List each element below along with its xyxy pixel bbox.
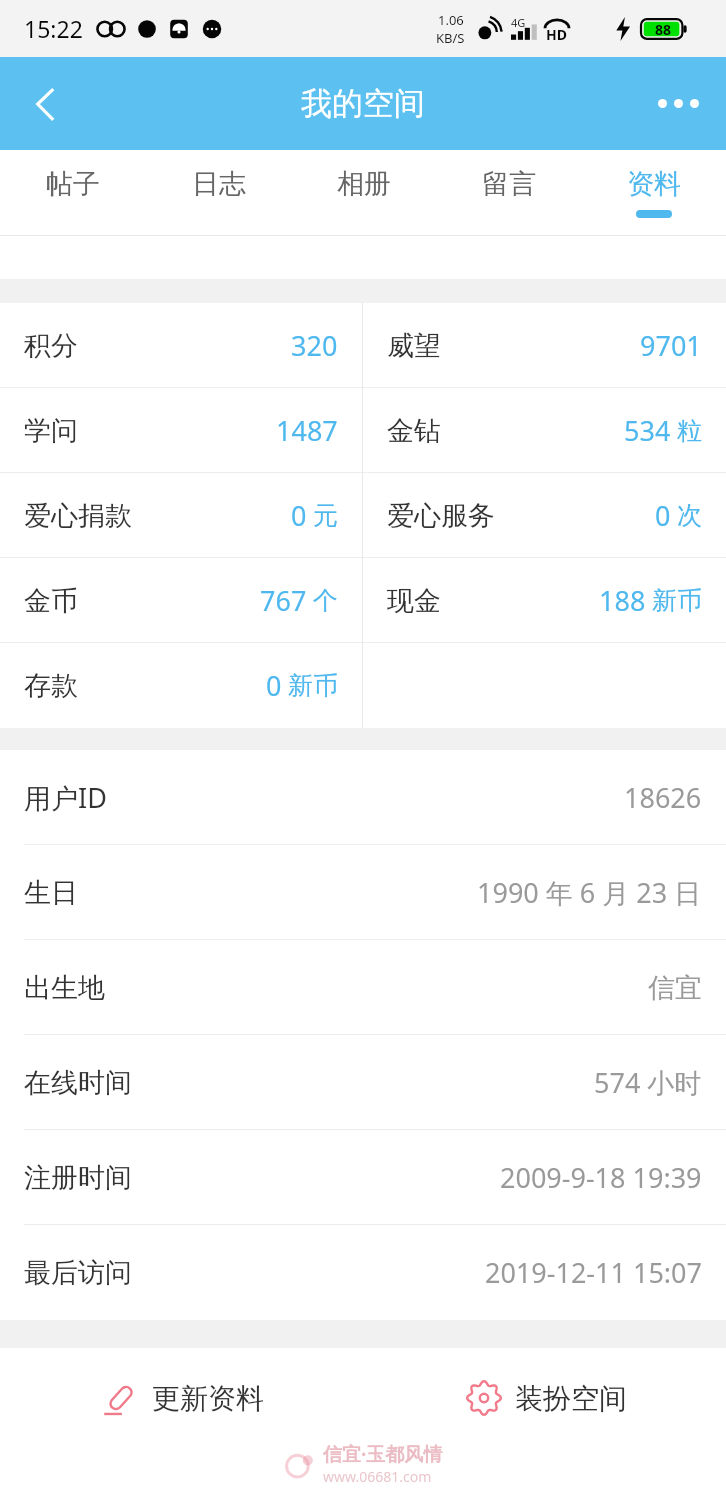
button[interactable]: More options [630,57,726,150]
staticText: 信宜 [648,971,702,1005]
staticText: 用户ID [24,779,107,816]
staticText: 新币 [288,670,338,701]
button[interactable]: Back [0,57,92,150]
staticText: 相册 [337,167,391,201]
staticText: 信宜·玉都风情 [323,1441,443,1467]
staticText: 2009-9-18 19:39 [500,1159,702,1196]
staticText: 个 [313,585,338,616]
staticText: 1487 [276,412,338,449]
button[interactable]: 金钻 [363,388,726,473]
staticText: 爱心服务 [387,499,495,533]
button[interactable]: 威望 [363,303,726,388]
staticText: 2019-12-11 15:07 [485,1254,702,1291]
button[interactable]: 现金 [363,558,726,643]
staticText: 粒 [677,415,702,446]
staticText: 574 小时 [594,1064,702,1101]
staticText: 日志 [192,167,246,201]
staticText: 767 [260,582,307,619]
staticText: HD [546,25,567,44]
staticText: 在线时间 [24,1066,132,1100]
staticText: 元 [313,500,338,531]
staticText: 装扮空间 [515,1381,627,1416]
staticText: 留言 [482,167,536,201]
staticText: 4G [511,15,526,30]
button[interactable]: 生日 [0,845,726,940]
button[interactable]: 在线时间 [0,1035,726,1130]
button[interactable]: 最后访问 [0,1225,726,1320]
staticText: 现金 [387,584,441,618]
staticText: 88 [655,20,672,39]
staticText: 1990 年 6 月 23 日 [477,874,702,911]
button[interactable]: 积分 [0,303,362,388]
staticText: 我的空间 [301,84,425,123]
staticText: 帖子 [46,167,100,201]
button[interactable]: 爱心捐款 [0,473,362,558]
staticText: 金钻 [387,414,441,448]
button[interactable]: 资料 [581,150,726,235]
staticText: 次 [677,500,702,531]
staticText: 15:22 [24,13,83,44]
button[interactable]: 注册时间 [0,1130,726,1225]
staticText: 9701 [640,327,702,364]
staticText: 积分 [24,329,78,363]
staticText: www.06681.com [323,1467,432,1486]
button[interactable]: 学问 [0,388,362,473]
button[interactable]: 爱心服务 [363,473,726,558]
staticText: 学问 [24,414,78,448]
button[interactable]: 用户ID [0,750,726,845]
staticText: 金币 [24,584,78,618]
staticText: 0 [655,497,671,534]
button[interactable]: 存款 [0,643,362,728]
staticText: 资料 [627,167,681,201]
staticText: 生日 [24,876,78,910]
button[interactable]: 相册 [291,150,436,235]
button[interactable]: 帖子 [0,150,146,235]
staticText: 存款 [24,669,78,703]
staticText: 新币 [652,585,702,616]
staticText: 534 [624,412,671,449]
button[interactable]: 金币 [0,558,362,643]
button[interactable]: 更新资料 [0,1348,363,1448]
button[interactable]: 留言 [436,150,581,235]
button[interactable]: 出生地 [0,940,726,1035]
staticText: 1.06 [438,11,464,29]
staticText: 18626 [624,779,702,816]
staticText: 更新资料 [152,1381,264,1416]
button[interactable]: 装扮空间 [363,1348,726,1448]
staticText: 威望 [387,329,441,363]
button[interactable]: 日志 [146,150,291,235]
staticText: 最后访问 [24,1256,132,1290]
staticText: KB/S [436,29,465,47]
staticText: 188 [599,582,646,619]
staticText: 0 [266,667,282,704]
staticText: 0 [291,497,307,534]
staticText: 爱心捐款 [24,499,132,533]
staticText: 320 [291,327,338,364]
staticText: 注册时间 [24,1161,132,1195]
staticText: 出生地 [24,971,105,1005]
